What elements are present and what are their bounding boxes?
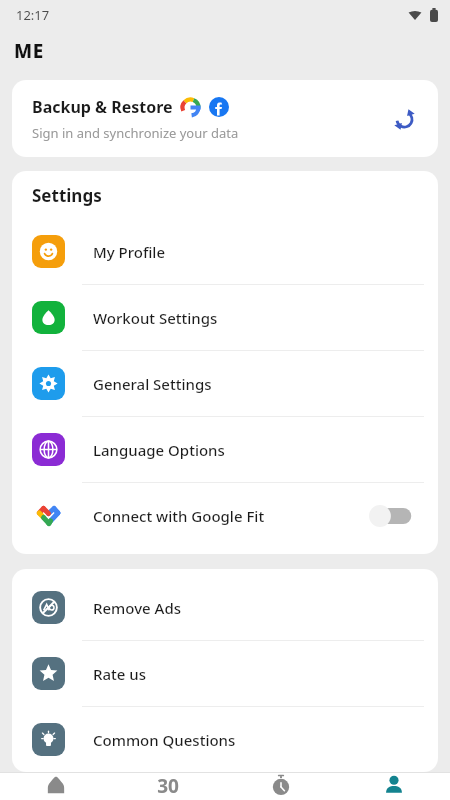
button[interactable]: Workout Settings [12, 285, 438, 351]
staticText: Rate us [93, 664, 147, 684]
button[interactable]: Sync [386, 101, 422, 137]
staticText: Sign in and synchronize your data [32, 124, 239, 142]
staticText: My Profile [93, 242, 166, 262]
button[interactable]: Remove Ads [12, 575, 438, 641]
staticText: 30 [157, 773, 179, 797]
staticText: Common Questions [93, 730, 236, 750]
button[interactable]: General Settings [12, 351, 438, 417]
staticText: 12:17 [16, 6, 50, 24]
staticText: Remove Ads [93, 598, 181, 618]
staticText: Language Options [93, 440, 225, 460]
button[interactable]: 30 [112, 773, 224, 800]
button[interactable]: Connect with Google Fit [12, 483, 438, 548]
button[interactable]: Common Questions [12, 707, 438, 772]
staticText: Workout Settings [93, 308, 218, 328]
button[interactable]: Rate us [12, 641, 438, 707]
staticText: ME [14, 38, 44, 64]
button[interactable]: Me [337, 773, 450, 800]
button[interactable]: Backup & Restore [12, 80, 438, 157]
staticText: General Settings [93, 374, 212, 394]
button[interactable]: Workout [224, 773, 337, 800]
staticText: Connect with Google Fit [93, 506, 265, 526]
button[interactable]: Language Options [12, 417, 438, 483]
button[interactable]: My Profile [12, 219, 438, 285]
staticText: Backup & Restore [32, 96, 173, 118]
button[interactable]: Daily [0, 773, 112, 800]
staticText: Settings [32, 184, 102, 207]
